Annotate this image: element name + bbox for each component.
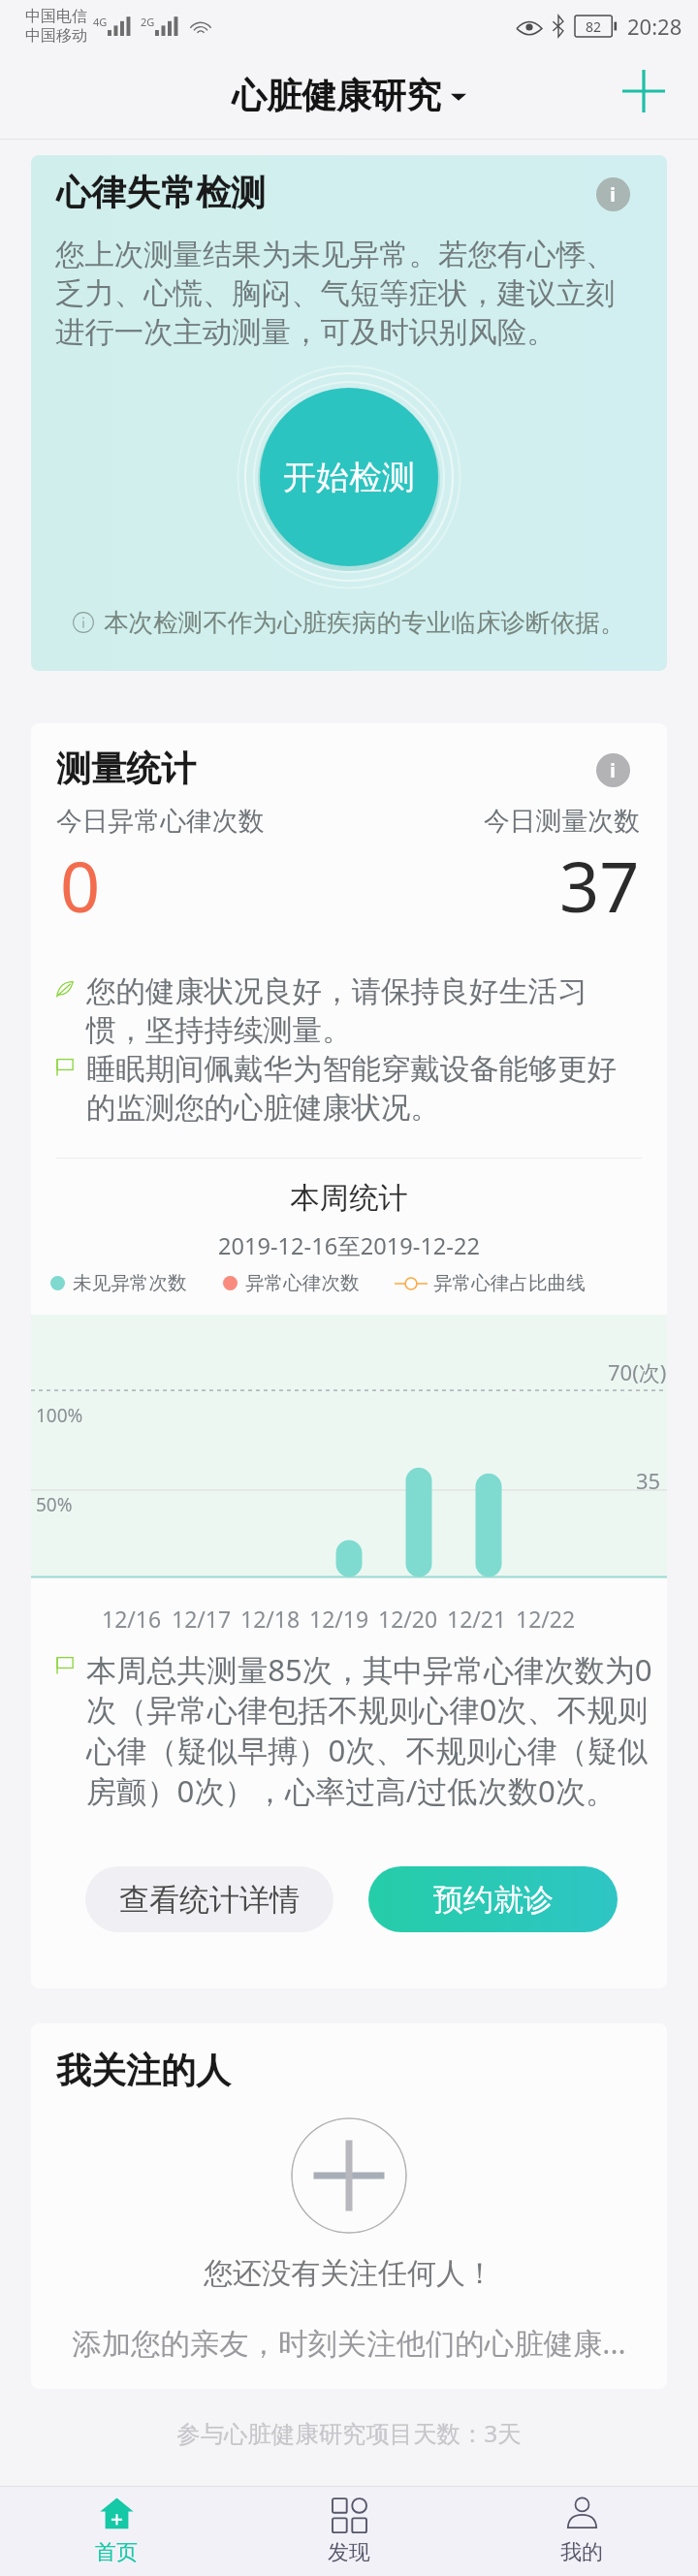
staticText: 参与心脏健康研究项目天数：3天 [0, 2417, 698, 2449]
button[interactable]: Add person [291, 2117, 407, 2234]
staticText: 中国电信 [25, 7, 87, 26]
staticText: 中国移动 [25, 26, 87, 46]
staticText: 今日异常心律次数 [56, 805, 265, 838]
staticText: 12/16 [102, 1604, 162, 1634]
button[interactable]: Info [589, 171, 636, 217]
button[interactable]: Info [589, 747, 636, 793]
staticText: 今日测量次数 [484, 805, 640, 838]
button[interactable]: 开始检测 [261, 389, 437, 565]
staticText: 本次检测不作为心脏疾病的专业临床诊断依据。 [104, 607, 625, 638]
button[interactable]: 发现 [233, 2487, 465, 2576]
staticText: 12/22 [516, 1604, 576, 1634]
staticText: 2G [141, 15, 155, 29]
staticText: 我的 [560, 2539, 603, 2566]
staticText: 12/17 [172, 1604, 232, 1634]
button[interactable]: 预约就诊 [368, 1866, 618, 1932]
staticText: 70(次) [608, 1357, 667, 1386]
staticText: i [610, 181, 616, 207]
staticText: 您上次测量结果为未见异常。若您有心悸、乏力、心慌、胸闷、气短等症状，建议立刻进行… [55, 237, 624, 351]
button[interactable]: 心脏健康研究 [232, 74, 466, 117]
button[interactable]: 首页 [0, 2487, 233, 2576]
staticText: 12/18 [240, 1604, 301, 1634]
staticText: 添加您的亲友，时刻关注他们的心脏健康... [31, 2323, 667, 2364]
button[interactable]: Add [607, 54, 681, 128]
staticText: 12/20 [378, 1604, 438, 1634]
staticText: 测量统计 [56, 747, 589, 790]
staticText: 12/19 [309, 1604, 369, 1634]
staticText: 4G [93, 15, 108, 29]
staticText: 开始检测 [283, 457, 415, 498]
staticText: 本周总共测量85次，其中异常心律次数为0次（异常心律包括不规则心律0次、不规则心… [86, 1649, 655, 1812]
staticText: 12/21 [447, 1604, 507, 1634]
staticText: 100% [36, 1403, 83, 1428]
staticText: 首页 [95, 2539, 138, 2566]
staticText: 50% [36, 1492, 73, 1517]
staticText: 异常心律次数 [245, 1271, 360, 1295]
staticText: i [610, 757, 616, 783]
staticText: 0 [60, 838, 101, 933]
staticText: 您的健康状况良好，请保持良好生活习惯，坚持持续测量。 [86, 973, 617, 1049]
staticText: 我关注的人 [56, 2049, 231, 2092]
staticText: 睡眠期间佩戴华为智能穿戴设备能够更好的监测您的心脏健康状况。 [86, 1051, 636, 1127]
staticText: 37 [559, 838, 640, 933]
staticText: 查看统计详情 [119, 1881, 300, 1919]
staticText: 发现 [328, 2539, 370, 2566]
staticText: 心脏健康研究 [232, 74, 441, 117]
staticText: 2019-12-16至2019-12-22 [31, 1230, 667, 1261]
staticText: 20:28 [627, 12, 682, 41]
staticText: 您还没有关注任何人！ [31, 2255, 667, 2292]
staticText: 异常心律占比曲线 [433, 1271, 586, 1295]
staticText: 预约就诊 [433, 1881, 554, 1919]
staticText: 82 [586, 17, 602, 36]
button[interactable]: 查看统计详情 [85, 1866, 333, 1932]
staticText: 本周统计 [31, 1180, 667, 1217]
staticText: 心律失常检测 [56, 171, 589, 214]
button[interactable]: 我的 [465, 2487, 698, 2576]
staticText: 35 [636, 1466, 661, 1495]
staticText: 未见异常次数 [73, 1271, 187, 1295]
